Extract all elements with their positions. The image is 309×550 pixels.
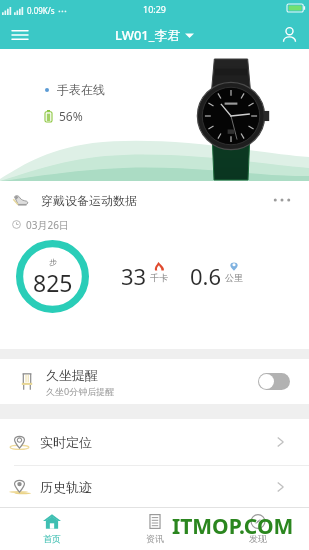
staticText: 手表在线	[57, 82, 105, 97]
button[interactable]: 久坐提醒	[0, 359, 309, 404]
staticText: 实时定位	[40, 434, 92, 450]
button[interactable]: 历史轨迹	[0, 466, 309, 507]
staticText: 首页	[43, 533, 61, 544]
staticText: 03月26日	[26, 218, 69, 230]
staticText: 发现	[249, 533, 267, 544]
staticText: 公里	[225, 272, 243, 283]
button[interactable]: 资讯	[103, 508, 206, 550]
staticText: ITMOP.COM	[172, 512, 294, 541]
button[interactable]: 实时定位	[0, 419, 309, 465]
button[interactable]: Toggle sedentary reminder	[258, 373, 290, 390]
staticText: 10:29	[143, 3, 167, 15]
button[interactable]: 发现	[206, 508, 309, 550]
staticText: 825	[33, 267, 73, 298]
staticText: 步	[49, 257, 57, 267]
button[interactable]: 首页	[0, 508, 103, 550]
button[interactable]: Menu	[0, 20, 40, 49]
staticText: 56%	[59, 108, 83, 124]
staticText: 历史轨迹	[40, 479, 92, 495]
staticText: 千卡	[150, 272, 168, 283]
staticText: 久坐提醒	[46, 367, 98, 383]
staticText: 久坐0分钟后提醒	[46, 385, 115, 397]
button[interactable]: More options	[271, 190, 293, 210]
staticText: 资讯	[146, 533, 164, 544]
staticText: 穿戴设备运动数据	[41, 193, 137, 208]
staticText: 0.6	[190, 261, 222, 291]
button[interactable]: Profile	[269, 20, 309, 49]
staticText: 0.09K/s	[27, 5, 55, 16]
staticText: 33	[121, 261, 147, 291]
staticText: LW01_李君	[115, 26, 181, 44]
